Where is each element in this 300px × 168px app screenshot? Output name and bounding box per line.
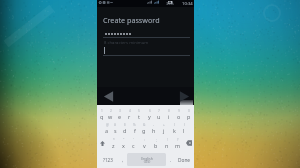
staticText: ; [156,138,157,142]
button[interactable]: & [139,122,149,134]
staticText: ( [174,123,175,127]
button[interactable]: ( [169,122,179,134]
staticText: 8 characters minimum [104,40,149,46]
button[interactable]: 1 [97,108,106,120]
staticText: s [114,127,117,134]
button[interactable]: Shift [97,137,108,149]
button[interactable]: + [159,122,169,134]
staticText: 8 [168,109,170,113]
staticText: a [105,127,109,134]
button[interactable]: ?123 [98,152,118,168]
staticText: e [118,113,122,120]
staticText: ) [184,123,185,127]
staticText: - [153,123,155,127]
button[interactable]: 5 [134,108,144,120]
staticText: 1 [101,109,103,113]
staticText: o [177,113,181,120]
staticText: 4 [129,109,131,113]
staticText: 0 [188,109,190,113]
button[interactable]: " [118,137,128,149]
staticText: 33% [166,1,174,6]
staticText: " [123,138,125,142]
staticText: x [122,142,125,149]
button[interactable]: 7 [154,108,164,120]
staticText: 7 [158,109,160,113]
staticText: u [157,113,161,120]
button[interactable]: - [149,122,159,134]
button[interactable]: 6 [144,108,154,120]
button[interactable]: Hide keyboard [180,100,193,105]
staticText: c [132,142,135,149]
staticText: v [143,142,146,149]
button[interactable]: ' [128,137,139,149]
staticText: k [173,127,176,134]
button[interactable]: Backspace [183,137,194,149]
staticText: @ [106,123,109,127]
staticText: # [114,123,117,127]
staticText: j [163,127,165,134]
staticText: $ [124,123,126,127]
staticText: t [138,113,140,120]
staticText: , [122,157,124,164]
staticText: p [187,113,191,120]
staticText: 6 [149,109,151,113]
button[interactable]: ; [150,137,161,149]
button[interactable]: Done [175,152,194,168]
staticText: m [175,142,181,149]
staticText: ? [177,138,179,142]
staticText: w [108,113,113,120]
button[interactable]: # [111,122,120,134]
staticText: * [113,138,115,142]
staticText: d [123,127,127,134]
staticText: b [154,142,158,149]
button[interactable]: ! [161,137,172,149]
staticText: 2 [110,109,112,113]
staticText: z [112,142,115,149]
staticText: g [142,127,146,134]
staticText: Create password [103,15,160,25]
button[interactable]: * [108,137,118,149]
button[interactable]: Forward [176,88,192,104]
staticText: 9 [178,109,180,113]
staticText: . [170,157,172,164]
button[interactable]: 2 [106,108,115,120]
staticText: ' [133,138,134,142]
staticText: Done [178,157,191,164]
button[interactable]: @ [102,122,111,134]
staticText: : [144,138,145,142]
staticText: ?123 [103,157,113,163]
staticText: h [152,127,156,134]
staticText: y [148,113,151,120]
button[interactable]: ) [179,122,189,134]
button[interactable]: 8 [164,108,174,120]
staticText: 10:34 [182,1,193,7]
button[interactable]: 3 [115,108,124,120]
button[interactable]: ? [172,137,183,149]
button[interactable]: 9 [174,108,184,120]
staticText: n [165,142,169,149]
staticText: English (US) [141,156,153,164]
staticText: i [168,113,170,120]
button[interactable]: $ [120,122,129,134]
button[interactable]: Back [100,88,116,104]
staticText: % [133,123,136,127]
button[interactable]: Period [167,152,175,168]
staticText: 5 [138,109,140,113]
button[interactable]: 4 [124,108,134,120]
staticText: ! [167,138,168,142]
button[interactable]: % [129,122,139,134]
button[interactable]: Comma [119,152,127,168]
button[interactable]: : [139,137,150,149]
staticText: l [183,127,185,134]
staticText: & [143,123,146,127]
button[interactable]: English (US) [127,153,166,166]
staticText: + [163,123,165,127]
staticText: q [100,113,104,120]
staticText: f [134,127,136,134]
button[interactable]: 0 [184,108,194,120]
staticText: 3 [119,109,121,113]
staticText: r [128,113,131,120]
